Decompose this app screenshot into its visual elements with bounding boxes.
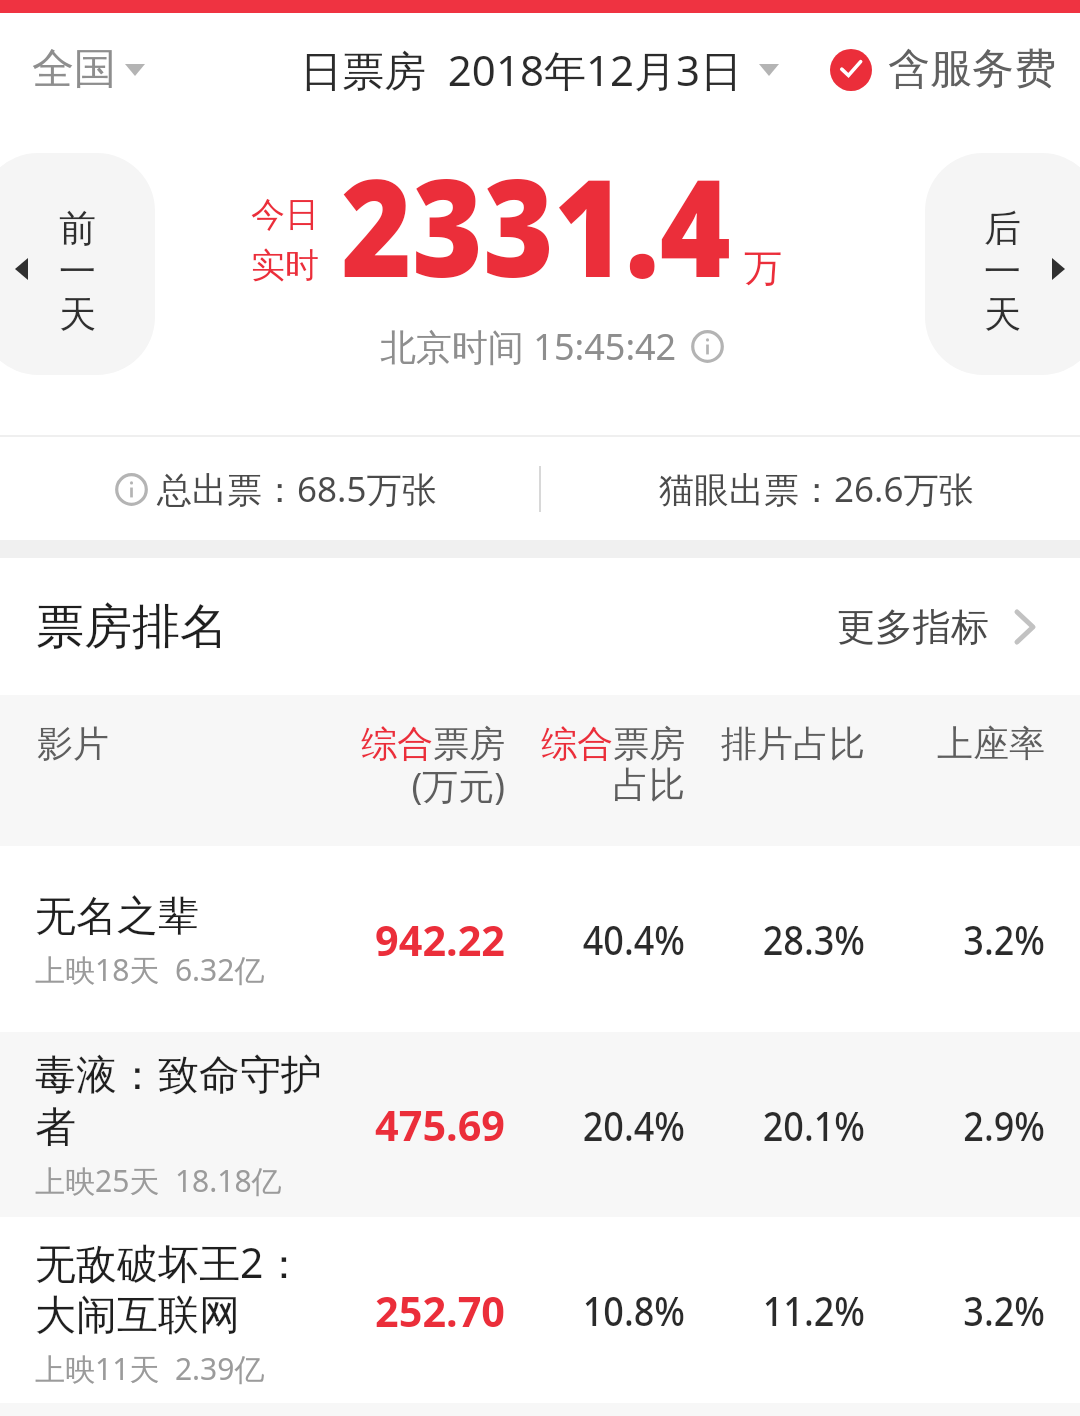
- staticText: 票房排名: [36, 597, 228, 657]
- button[interactable]: 总出票：68.5万张: [6, 465, 545, 513]
- staticText: 更多指标: [837, 603, 989, 651]
- staticText: 40.4%: [523, 912, 685, 966]
- staticText: 综合票房 占比: [505, 721, 685, 808]
- staticText: 3.2%: [883, 1283, 1045, 1337]
- staticText: 11.2%: [703, 1283, 865, 1337]
- button[interactable]: 后一天: [925, 153, 1080, 375]
- staticText: 942.22: [328, 911, 505, 968]
- staticText: 上映18天 6.32亿: [35, 949, 265, 990]
- button[interactable]: 含服务费: [830, 31, 1056, 108]
- staticText: 上映11天 2.39亿: [35, 1348, 265, 1389]
- button[interactable]: 前一天: [0, 153, 155, 375]
- button[interactable]: 日票房 2018年12月3日: [300, 27, 779, 112]
- button[interactable]: 更多指标: [831, 589, 1042, 665]
- button[interactable]: 无名之辈: [0, 846, 1080, 1032]
- staticText: 20.4%: [523, 1098, 685, 1152]
- staticText: 者: [35, 1102, 76, 1154]
- staticText: 3.2%: [883, 912, 1045, 966]
- staticText: 上座率: [865, 721, 1045, 766]
- staticText: 无敌破坏王2：: [35, 1234, 305, 1290]
- staticText: 毒液：致命守护: [35, 1050, 322, 1102]
- staticText: 含服务费: [888, 43, 1056, 96]
- staticText: 前 一 天: [59, 205, 96, 338]
- staticText: 475.69: [328, 1096, 505, 1153]
- staticText: 全国: [32, 43, 116, 96]
- staticText: 后 一 天: [984, 205, 1021, 338]
- staticText: 日票房 2018年12月3日: [300, 41, 743, 98]
- staticText: 排片占比: [685, 721, 865, 766]
- staticText: 2331.4: [341, 133, 731, 317]
- staticText: 综合票房 (万元): [325, 721, 505, 810]
- staticText: 大闹互联网: [35, 1290, 240, 1342]
- staticText: 万: [744, 244, 782, 292]
- staticText: 总出票：68.5万张: [157, 465, 437, 513]
- button[interactable]: 无敌破坏王2：: [0, 1217, 1080, 1403]
- staticText: 北京时间 15:45:42: [380, 322, 677, 371]
- staticText: 28.3%: [703, 912, 865, 966]
- staticText: 影片: [37, 721, 109, 766]
- staticText: 252.70: [328, 1282, 505, 1339]
- staticText: 20.1%: [703, 1098, 865, 1152]
- button[interactable]: 全国: [24, 29, 153, 110]
- staticText: 上映25天 18.18亿: [35, 1160, 282, 1201]
- staticText: 10.8%: [523, 1283, 685, 1337]
- staticText: 无名之辈: [35, 891, 199, 943]
- button[interactable]: 毒液：致命守护: [0, 1032, 1080, 1217]
- staticText: 今日 实时: [251, 193, 319, 287]
- staticText: 2.9%: [883, 1098, 1045, 1152]
- staticText: 猫眼出票：26.6万张: [659, 465, 974, 513]
